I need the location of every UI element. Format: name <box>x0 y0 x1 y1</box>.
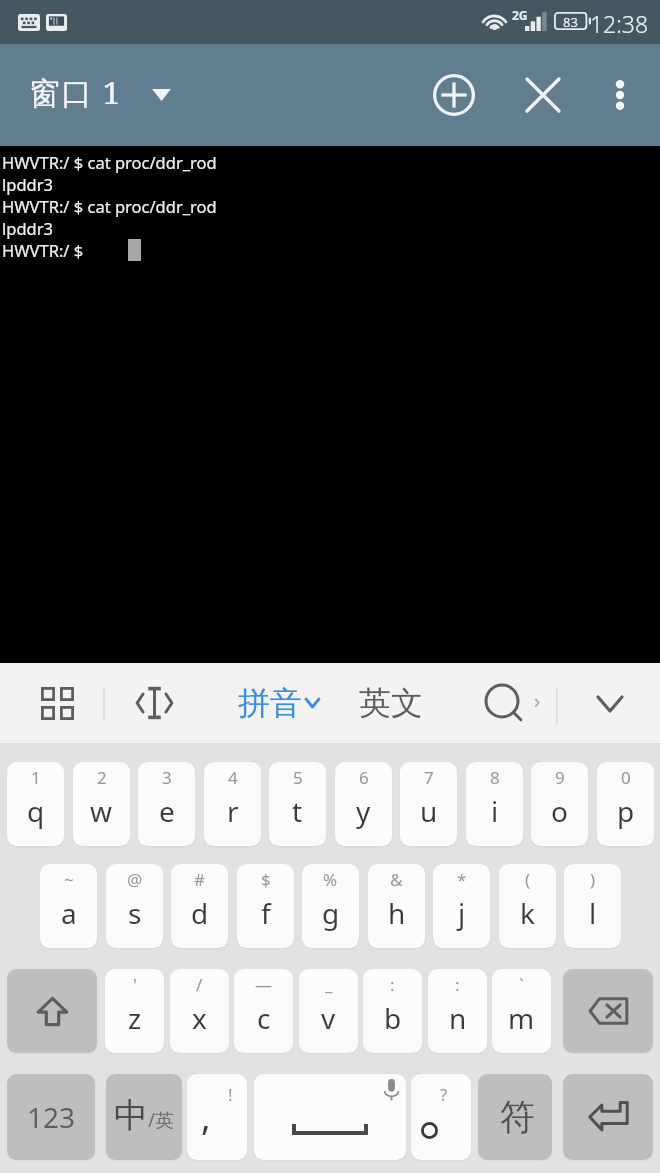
button[interactable]: $ <box>237 864 294 948</box>
button[interactable]: New window <box>424 44 484 146</box>
staticText: 0 <box>621 766 631 789</box>
staticText: 83 <box>554 13 587 31</box>
button[interactable]: ' <box>105 969 164 1053</box>
staticText: 9 <box>555 766 565 789</box>
staticText: 12:38 <box>584 8 654 39</box>
button[interactable]: Shift <box>7 969 97 1053</box>
button[interactable]: 123 <box>7 1074 95 1160</box>
staticText: ? <box>440 1083 448 1106</box>
staticText: r <box>227 792 239 830</box>
button[interactable]: 0 <box>597 762 654 846</box>
button[interactable]: 中 <box>106 1074 182 1160</box>
button[interactable]: Backspace <box>563 969 653 1053</box>
button[interactable]: ! <box>187 1074 247 1160</box>
staticText: z <box>128 999 142 1037</box>
button[interactable]: Close <box>513 44 573 146</box>
staticText: o <box>551 792 568 830</box>
button[interactable]: _ <box>299 969 358 1053</box>
button[interactable]: Search <box>474 663 534 743</box>
button[interactable]: 2 <box>73 762 130 846</box>
staticText: 符 <box>500 1095 535 1139</box>
staticText: 4 <box>228 766 238 789</box>
staticText: 英文 <box>359 683 423 723</box>
button[interactable]: : <box>363 969 422 1053</box>
button[interactable]: ` <box>492 969 551 1053</box>
staticText: % <box>323 868 338 891</box>
staticText: # <box>194 868 205 891</box>
staticText: a <box>61 894 77 932</box>
button[interactable]: 9 <box>531 762 588 846</box>
staticText: 3 <box>162 766 172 789</box>
button[interactable]: % <box>302 864 359 948</box>
button[interactable]: Enter <box>563 1074 653 1160</box>
button[interactable]: 英文 <box>352 663 430 743</box>
button[interactable]: & <box>368 864 425 948</box>
staticText: d <box>191 894 209 932</box>
button[interactable]: More options <box>598 44 642 146</box>
staticText: : <box>390 973 395 996</box>
staticText: /英 <box>148 1107 175 1133</box>
staticText: s <box>128 894 142 932</box>
button[interactable]: # <box>171 864 228 948</box>
staticText: ~ <box>64 868 74 891</box>
staticText: lpddr3 <box>2 217 53 239</box>
staticText: ' <box>133 973 137 996</box>
staticText: e <box>159 792 175 830</box>
button[interactable]: 1 <box>7 762 64 846</box>
button[interactable]: ? <box>411 1074 471 1160</box>
staticText: k <box>520 894 535 932</box>
staticText: v <box>321 999 336 1037</box>
staticText: t <box>292 792 303 830</box>
staticText: h <box>388 894 406 932</box>
button[interactable]: 符 <box>478 1074 552 1160</box>
staticText: $ <box>261 868 271 891</box>
staticText: 6 <box>359 766 369 789</box>
staticText: x <box>192 999 207 1037</box>
button[interactable]: — <box>234 969 293 1053</box>
button[interactable]: @ <box>106 864 163 948</box>
button[interactable]: * <box>433 864 490 948</box>
staticText: HWVTR:/ $ <box>2 239 84 261</box>
button[interactable]: 窗口 1 <box>24 44 180 146</box>
button[interactable]: 3 <box>138 762 195 846</box>
staticText: p <box>617 792 635 830</box>
staticText: f <box>261 894 271 932</box>
staticText: ` <box>519 973 524 996</box>
button[interactable]: : <box>428 969 487 1053</box>
button[interactable]: Move cursor <box>124 663 184 743</box>
button[interactable]: / <box>170 969 229 1053</box>
button[interactable]: 4 <box>204 762 261 846</box>
staticText: l <box>589 894 597 932</box>
staticText: u <box>420 792 438 830</box>
staticText: m <box>508 999 535 1037</box>
staticText: lpddr3 <box>2 173 53 195</box>
staticText: * <box>457 868 467 891</box>
button[interactable]: 7 <box>400 762 457 846</box>
staticText: w <box>90 792 113 830</box>
staticText: ) <box>590 868 596 891</box>
staticText: HWVTR:/ $ cat proc/ddr_rod <box>2 195 217 217</box>
staticText: 2G <box>512 7 528 23</box>
staticText: 中 <box>114 1094 148 1137</box>
staticText: 1 <box>31 766 41 789</box>
staticText: / <box>196 973 203 996</box>
button[interactable]: Space <box>254 1074 406 1160</box>
button[interactable]: 拼音 <box>232 663 324 743</box>
button[interactable]: Keyboard layouts <box>24 663 90 743</box>
button[interactable]: Hide keyboard <box>578 663 642 743</box>
button[interactable]: 8 <box>466 762 523 846</box>
button[interactable]: ( <box>499 864 556 948</box>
staticText: 拼音 <box>238 683 302 723</box>
staticText: HWVTR:/ $ cat proc/ddr_rod <box>2 151 217 173</box>
staticText: b <box>384 999 402 1037</box>
staticText: 5 <box>293 766 303 789</box>
staticText: j <box>458 894 466 932</box>
button[interactable]: ) <box>564 864 621 948</box>
staticText: i <box>491 792 499 830</box>
button[interactable]: 6 <box>335 762 392 846</box>
staticText: 8 <box>490 766 500 789</box>
staticText: y <box>356 792 371 830</box>
button[interactable]: 5 <box>269 762 326 846</box>
button[interactable]: ~ <box>40 864 97 948</box>
staticText: q <box>27 792 45 830</box>
